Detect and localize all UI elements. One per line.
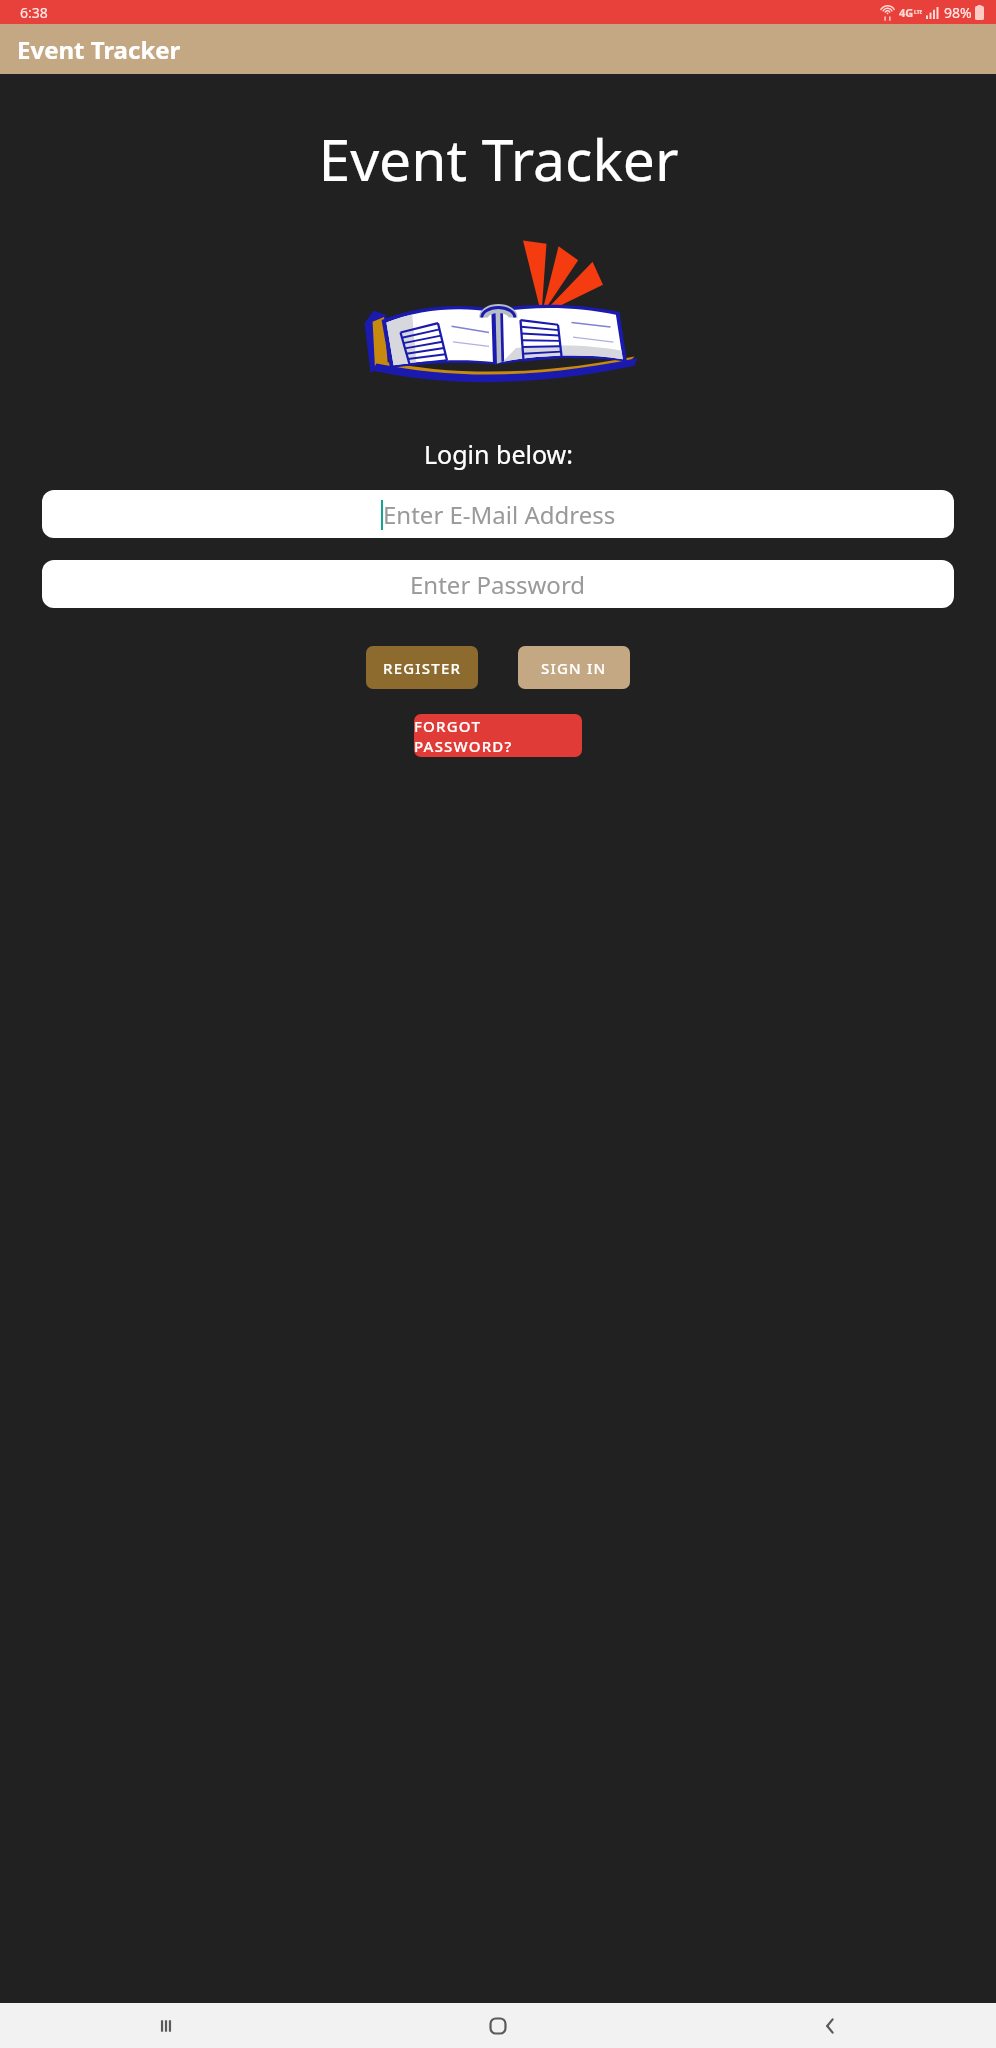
button[interactable]: Enter Password — [42, 560, 954, 608]
staticText: Event Tracker — [318, 120, 679, 198]
button[interactable]: SIGN IN — [518, 646, 630, 689]
staticText: FORGOT PASSWORD? — [414, 716, 582, 756]
button[interactable]: FORGOT PASSWORD? — [414, 714, 582, 757]
staticText: Event Tracker — [17, 33, 181, 66]
staticText: Enter Password — [410, 568, 586, 601]
button[interactable]: Enter E-Mail Address — [42, 490, 954, 538]
button[interactable]: REGISTER — [366, 646, 478, 689]
button[interactable]: Home — [332, 2003, 664, 2048]
staticText: SIGN IN — [541, 658, 607, 678]
staticText: 98% — [944, 3, 972, 22]
staticText: 6:38 — [20, 3, 48, 22]
staticText: REGISTER — [383, 658, 462, 678]
button[interactable]: Back — [664, 2003, 996, 2048]
staticText: LTE — [914, 9, 923, 16]
button[interactable]: Recent apps — [0, 2003, 332, 2048]
staticText: Login below: — [424, 437, 573, 471]
staticText: Enter E-Mail Address — [383, 498, 616, 531]
staticText: 4G — [899, 5, 914, 20]
